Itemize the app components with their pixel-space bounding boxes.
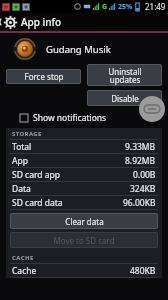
staticText: App info [21, 15, 62, 29]
staticText: STORAGE [12, 130, 42, 138]
staticText: CACHE [12, 254, 34, 262]
staticText: Cache [12, 265, 37, 277]
staticText: G [102, 2, 107, 12]
button[interactable]: SD card data [6, 196, 162, 210]
button[interactable]: Force stop [6, 69, 81, 84]
staticText: 9.33MB [125, 141, 156, 153]
staticText: Force stop [24, 71, 64, 82]
button[interactable]: App [6, 154, 162, 168]
button[interactable]: Assistive menu [139, 96, 165, 122]
staticText: Disable [111, 93, 139, 104]
button[interactable]: SD card app [6, 168, 162, 182]
staticText: 21:49 [145, 1, 166, 12]
button[interactable]: Uninstall updates [87, 64, 162, 86]
staticText: Total [12, 141, 32, 153]
button[interactable]: Gudang Musik [0, 34, 168, 64]
staticText: SD card data [12, 197, 63, 209]
staticText: 96.00KB [123, 197, 156, 209]
button[interactable]: Disable [87, 90, 162, 106]
staticText: Uninstall updates [108, 66, 142, 85]
staticText: Gudang Musik [46, 43, 111, 56]
staticText: Clear data [65, 216, 104, 227]
staticText: Show notifications [33, 112, 107, 124]
staticText: 480KB [130, 265, 156, 277]
button[interactable]: Total [6, 140, 162, 154]
staticText: 25% [118, 2, 133, 12]
button[interactable]: Clear data [10, 213, 158, 229]
staticText: Data [12, 183, 31, 195]
staticText: 324KB [130, 183, 156, 195]
button[interactable]: App info [0, 13, 168, 31]
button[interactable]: Cache [6, 264, 162, 278]
button: Move to SD card [10, 232, 158, 248]
staticText: 8.92MB [125, 155, 156, 167]
button[interactable]: Show notifications [0, 108, 168, 128]
staticText: Move to SD card [53, 235, 115, 246]
staticText: App [12, 155, 28, 167]
button[interactable]: Data [6, 182, 162, 196]
staticText: 0.00B [133, 169, 156, 181]
staticText: SD card app [12, 169, 60, 181]
